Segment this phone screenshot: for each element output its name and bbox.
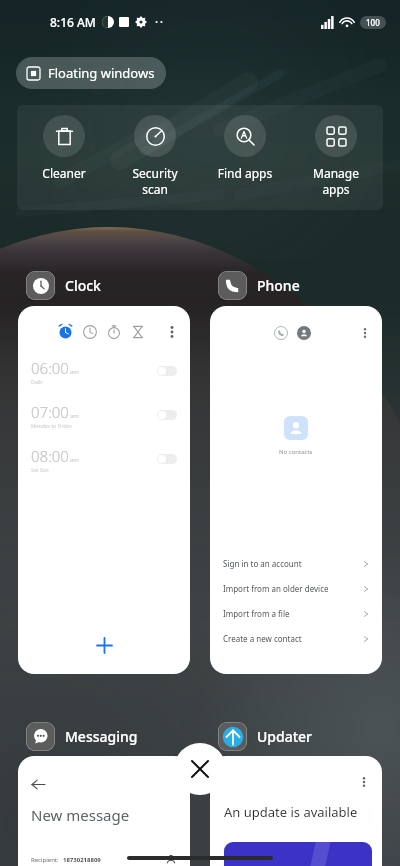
- button[interactable]: Messaging: [16, 721, 138, 751]
- button[interactable]: Sign in to an account: [210, 551, 382, 576]
- button[interactable]: 06:00: [18, 306, 190, 674]
- staticText: Sign in to an account: [223, 558, 302, 569]
- button[interactable]: Toggle alarm: [157, 366, 177, 376]
- button[interactable]: Import from an older device: [210, 576, 382, 601]
- staticText: Cleaner: [20, 165, 108, 181]
- button[interactable]: Clock: [16, 270, 101, 300]
- button[interactable]: New message: [18, 756, 190, 866]
- staticText: Import from a file: [223, 608, 290, 619]
- staticText: Monday to Friday: [31, 423, 72, 428]
- staticText: Find apps: [201, 165, 289, 181]
- button[interactable]: Updater: [208, 721, 313, 751]
- staticText: 18730218809: [63, 856, 101, 864]
- staticText: Daily: [31, 379, 43, 384]
- staticText: No contacts: [279, 448, 313, 456]
- button[interactable]: An update is available: [210, 756, 382, 866]
- button[interactable]: Manage apps: [292, 105, 380, 198]
- staticText: An update is available: [224, 803, 358, 821]
- button[interactable]: Find apps: [201, 105, 289, 181]
- staticText: am: [70, 456, 79, 464]
- staticText: 06:00: [31, 358, 69, 378]
- staticText: 8:16 AM: [50, 14, 96, 30]
- button[interactable]: Cleaner: [20, 105, 108, 181]
- staticText: 07:00: [31, 402, 69, 422]
- button[interactable]: 08:00: [18, 446, 190, 472]
- staticText: Import from an older device: [223, 583, 329, 594]
- staticText: Updater: [257, 727, 313, 746]
- button[interactable]: 06:00: [18, 358, 190, 384]
- staticText: Phone: [257, 276, 300, 295]
- button[interactable]: Create a new contact: [210, 626, 382, 651]
- staticText: Create a new contact: [223, 633, 302, 644]
- staticText: Security scan: [111, 165, 199, 198]
- staticText: Sat Sun: [31, 467, 49, 472]
- button[interactable]: Toggle alarm: [157, 454, 177, 464]
- button[interactable]: Security scan: [111, 105, 199, 198]
- staticText: 08:00: [31, 446, 69, 466]
- button[interactable]: Floating windows: [16, 57, 166, 89]
- staticText: am: [70, 412, 79, 420]
- staticText: am: [70, 368, 79, 376]
- staticText: Clock: [65, 276, 101, 295]
- button[interactable]: 07:00: [18, 402, 190, 428]
- button[interactable]: Phone: [208, 270, 300, 300]
- button[interactable]: Close: [174, 743, 226, 795]
- button[interactable]: No contacts: [210, 306, 382, 674]
- staticText: Manage apps: [292, 165, 380, 198]
- staticText: Recipient:: [31, 856, 59, 864]
- button[interactable]: Toggle alarm: [157, 410, 177, 420]
- staticText: Messaging: [65, 727, 138, 746]
- button[interactable]: Import from a file: [210, 601, 382, 626]
- staticText: New message: [31, 805, 130, 825]
- staticText: Floating windows: [48, 64, 155, 82]
- staticText: 100: [366, 17, 380, 28]
